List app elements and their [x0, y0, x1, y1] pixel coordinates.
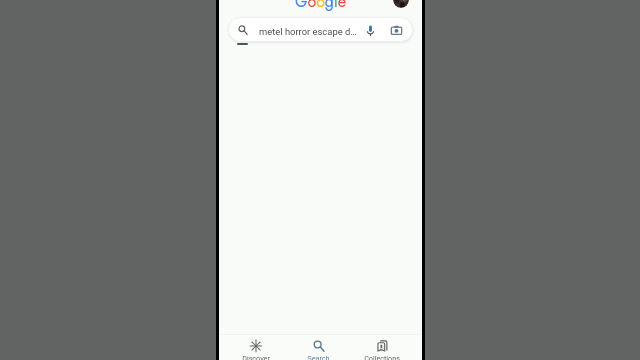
staticText: Discover	[242, 354, 270, 360]
button[interactable]: Search	[287, 335, 350, 360]
staticText: Collections	[364, 354, 400, 360]
staticText: Search	[307, 354, 330, 360]
staticText: metel horror escape d…	[259, 26, 357, 37]
button[interactable]: Voice search	[362, 22, 378, 38]
button[interactable]: Collections	[350, 335, 413, 360]
button[interactable]: metel horror escape d…	[228, 17, 413, 42]
button[interactable]: Account	[393, 0, 409, 8]
staticText: Google	[295, 0, 346, 13]
button[interactable]: Google Lens	[388, 22, 404, 38]
button[interactable]: Discover	[224, 335, 287, 360]
